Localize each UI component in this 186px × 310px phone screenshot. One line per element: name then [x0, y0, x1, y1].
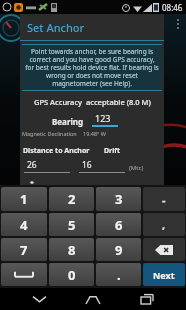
button[interactable]: -: [143, 187, 185, 211]
button[interactable]: 0: [49, 263, 94, 286]
button[interactable]: Home: [78, 289, 108, 309]
button[interactable]: 9: [96, 238, 141, 261]
staticText: Set Anchor: [27, 20, 85, 35]
button[interactable]: 2: [49, 187, 94, 211]
button[interactable]: 7: [1, 238, 47, 261]
staticText: 123: [95, 112, 111, 124]
staticText: 26: [27, 159, 37, 171]
staticText: ,: [162, 217, 166, 232]
staticText: 5: [68, 216, 76, 234]
staticText: GPS Accuracy acceptable (8.0 M): [34, 97, 151, 107]
button[interactable]: Recent apps: [132, 289, 162, 309]
button[interactable]: 5: [49, 213, 94, 236]
staticText: Distance to Anchor: [23, 146, 90, 156]
staticText: 16: [82, 159, 92, 171]
staticText: -: [162, 192, 166, 207]
staticText: 6: [115, 216, 123, 234]
staticText: 0: [68, 266, 76, 284]
staticText: (Mtr.): [129, 164, 144, 172]
button[interactable]: Expand: [24, 180, 40, 185]
staticText: 9: [115, 241, 123, 259]
button[interactable]: 1: [1, 187, 47, 211]
staticText: 4: [20, 216, 28, 234]
button[interactable]: 6: [96, 213, 141, 236]
button[interactable]: 26: [24, 159, 70, 173]
button[interactable]: 8: [49, 238, 94, 261]
button[interactable]: More options: [174, 16, 182, 32]
staticText: Point towards anchor, be sure bearing is…: [25, 47, 159, 88]
button[interactable]: Hide keyboard: [24, 289, 54, 309]
button[interactable]: 4: [1, 213, 47, 236]
staticText: Magnetic Declination: [22, 130, 77, 137]
button[interactable]: ,: [143, 213, 185, 236]
staticText: Drift: [104, 146, 121, 156]
staticText: 3: [115, 190, 123, 208]
button[interactable]: Delete: [143, 238, 185, 261]
button[interactable]: Space: [1, 263, 47, 286]
staticText: 19.48° W: [83, 130, 106, 137]
button[interactable]: 16: [79, 159, 125, 173]
staticText: 08:46: [162, 2, 183, 13]
staticText: .: [117, 266, 121, 284]
staticText: 7: [20, 241, 28, 259]
staticText: 2: [68, 190, 76, 208]
staticText: 1: [20, 190, 28, 208]
staticText: Next: [153, 269, 175, 281]
staticText: 8: [68, 241, 76, 259]
staticText: Bearing: [52, 116, 84, 127]
button[interactable]: Next: [143, 263, 185, 286]
button[interactable]: .: [96, 263, 141, 286]
button[interactable]: 3: [96, 187, 141, 211]
